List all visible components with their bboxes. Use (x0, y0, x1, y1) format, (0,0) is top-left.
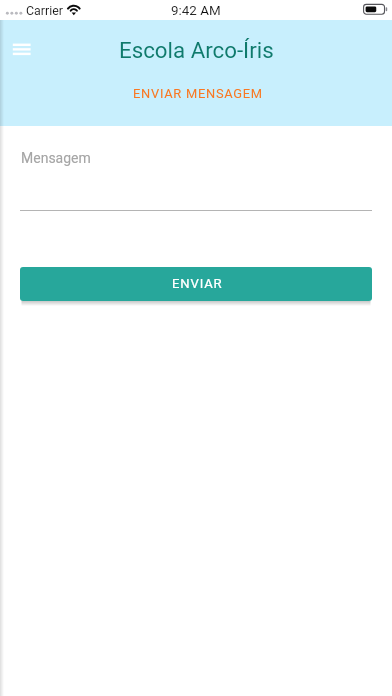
staticText: 9:42 AM (171, 3, 221, 19)
button[interactable]: Open navigation menu (5, 33, 39, 65)
button[interactable]: ENVIAR MENSAGEM (121, 78, 275, 109)
staticText: ENVIAR (172, 276, 223, 291)
staticText: Escola Arco-Íris (119, 37, 274, 63)
staticText: Carrier (26, 3, 63, 18)
staticText: ENVIAR MENSAGEM (133, 86, 263, 101)
staticText: Mensagem (21, 150, 91, 166)
button[interactable]: ENVIAR (20, 267, 372, 301)
